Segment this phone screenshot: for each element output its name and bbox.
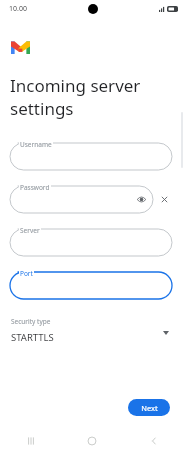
button[interactable]: Clear password: [160, 195, 169, 204]
staticText: Incoming server settings: [10, 74, 175, 120]
button[interactable]: Security type: [0, 314, 185, 346]
button[interactable]: Home: [61, 428, 123, 454]
staticText: STARTTLS: [11, 331, 54, 344]
staticText: 10.00: [9, 4, 27, 14]
button[interactable]: Show password: [10, 186, 153, 213]
staticText: Next: [141, 403, 158, 413]
button[interactable]: Server: [10, 229, 172, 256]
button[interactable]: Show password: [137, 195, 146, 204]
staticText: Password: [20, 183, 50, 192]
staticText: Port: [20, 269, 33, 278]
staticText: Server: [20, 226, 40, 235]
button[interactable]: Username: [10, 143, 172, 170]
staticText: Security type: [11, 317, 51, 326]
staticText: Username: [20, 140, 52, 149]
button[interactable]: Port: [10, 272, 172, 299]
button[interactable]: Recent apps: [0, 428, 61, 454]
button[interactable]: Next: [128, 399, 170, 416]
